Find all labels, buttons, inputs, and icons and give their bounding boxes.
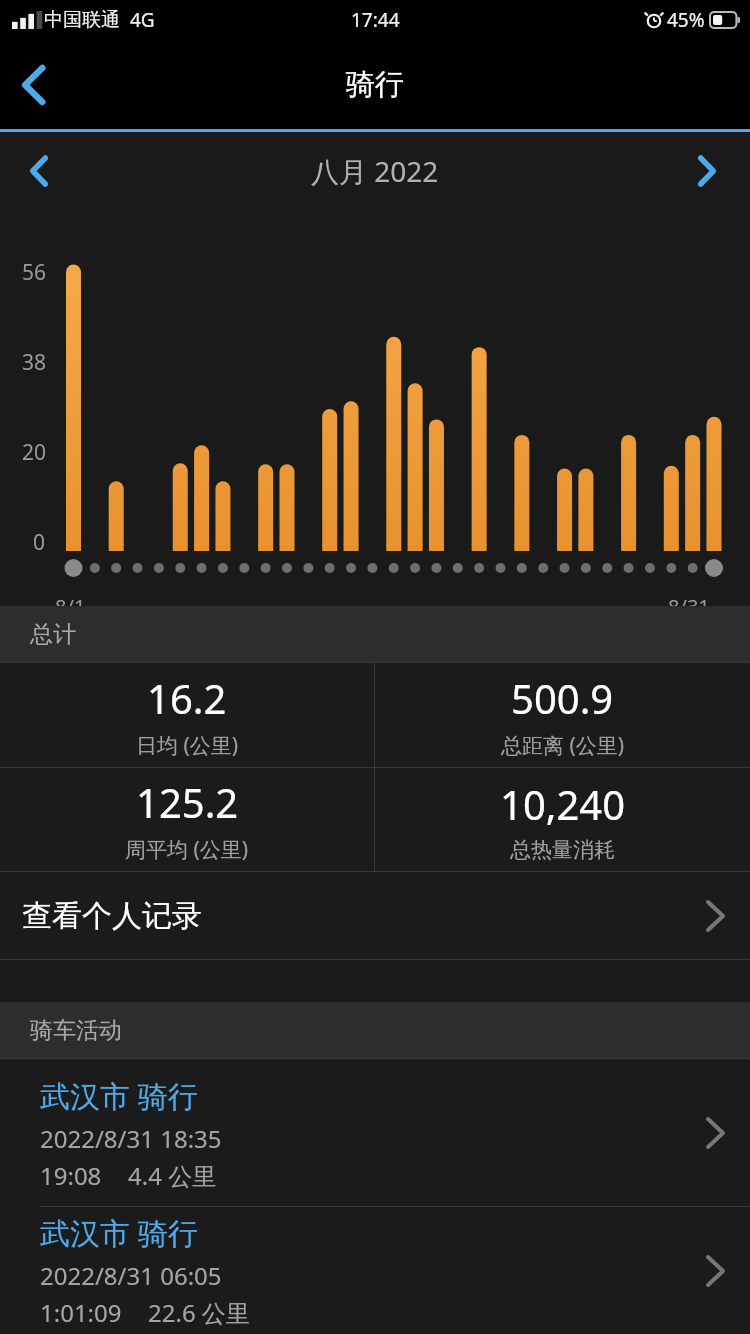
staticText: 1:01:09 bbox=[40, 1296, 122, 1329]
staticText: 16.2 bbox=[147, 671, 227, 725]
staticText: 56 bbox=[22, 258, 47, 287]
staticText: 总热量消耗 bbox=[510, 837, 615, 863]
staticText: 4G bbox=[130, 7, 155, 33]
staticText: 总计 bbox=[30, 620, 76, 649]
button[interactable]: 武汉市 骑行 bbox=[0, 1059, 750, 1207]
staticText: 19:08 bbox=[40, 1159, 102, 1192]
staticText: 38 bbox=[22, 348, 47, 377]
staticText: 骑车活动 bbox=[30, 1016, 122, 1045]
button[interactable]: 下个月 bbox=[676, 140, 738, 202]
staticText: 20 bbox=[22, 438, 47, 467]
button[interactable]: 500.9 bbox=[375, 663, 750, 767]
staticText: 8/31 bbox=[668, 593, 710, 620]
staticText: 22.6 公里 bbox=[148, 1296, 250, 1329]
button[interactable]: 返回 bbox=[0, 50, 70, 120]
staticText: 查看个人记录 bbox=[22, 897, 202, 935]
staticText: 八月 2022 bbox=[311, 152, 439, 190]
button[interactable]: 上个月 bbox=[8, 140, 70, 202]
button[interactable]: 武汉市 骑行 bbox=[0, 1207, 750, 1334]
button[interactable]: 10,240 bbox=[375, 768, 750, 871]
button[interactable]: 查看个人记录 bbox=[0, 872, 750, 960]
staticText: 8/1 bbox=[55, 593, 86, 620]
staticText: 武汉市 骑行 bbox=[40, 1075, 198, 1116]
staticText: 500.9 bbox=[511, 671, 614, 725]
staticText: 17:44 bbox=[351, 7, 400, 33]
staticText: 10,240 bbox=[500, 777, 626, 831]
staticText: 武汉市 骑行 bbox=[40, 1212, 198, 1253]
staticText: 125.2 bbox=[136, 775, 239, 829]
staticText: 2022/8/31 18:35 bbox=[40, 1122, 222, 1155]
staticText: 2022/8/31 06:05 bbox=[40, 1259, 222, 1292]
staticText: 4.4 公里 bbox=[128, 1159, 217, 1192]
staticText: 日均 (公里) bbox=[136, 731, 239, 760]
staticText: 中国联通 bbox=[44, 8, 120, 32]
staticText: 周平均 (公里) bbox=[125, 835, 249, 864]
staticText: 0 bbox=[33, 528, 46, 557]
staticText: 总距离 (公里) bbox=[501, 731, 625, 760]
staticText: 骑行 bbox=[346, 66, 404, 103]
button[interactable]: 16.2 bbox=[0, 663, 374, 767]
button[interactable]: 125.2 bbox=[0, 768, 374, 871]
staticText: 45% bbox=[667, 7, 705, 33]
